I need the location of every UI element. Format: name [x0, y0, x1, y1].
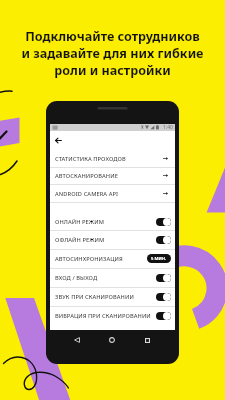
button[interactable]: ОНЛАЙН РЕЖИМ: [50, 213, 175, 230]
staticText: АВТОСКАНИРОВАНИЕ: [55, 172, 118, 180]
staticText: ОФЛАЙН РЕЖИМ: [55, 236, 105, 244]
staticText: АВТОСИНХРОНИЗАЦИЯ: [55, 255, 123, 263]
staticText: ANDROID CAMERA API: [55, 190, 119, 198]
staticText: СТАТИСТИКА ПРОХОДОВ: [55, 155, 126, 163]
button[interactable]: ВИБРАЦИЯ ПРИ СКАНИРОВАНИИ: [50, 307, 175, 324]
staticText: ВИБРАЦИЯ ПРИ СКАНИРОВАНИИ: [55, 312, 151, 320]
button[interactable]: АВТОСКАНИРОВАНИЕ: [50, 167, 175, 184]
staticText: ВХОД / ВЫХОД: [55, 274, 98, 282]
staticText: ЗВУК ПРИ СКАНИРОВАНИИ: [55, 293, 134, 301]
button[interactable]: Home: [105, 333, 119, 347]
button[interactable]: Back: [70, 333, 84, 347]
button[interactable]: Back: [51, 133, 65, 147]
button[interactable]: СТАТИСТИКА ПРОХОДОВ: [50, 150, 175, 167]
button[interactable]: Recent apps: [140, 333, 154, 347]
button[interactable]: ЗВУК ПРИ СКАНИРОВАНИИ: [50, 288, 175, 305]
button[interactable]: ANDROID CAMERA API: [50, 185, 175, 202]
button[interactable]: ОФЛАЙН РЕЖИМ: [50, 231, 175, 248]
staticText: 1:40: [163, 124, 173, 131]
staticText: ОНЛАЙН РЕЖИМ: [55, 218, 104, 226]
staticText: Подключайте сотрудников и задавайте для …: [0, 28, 225, 79]
button[interactable]: АВТОСИНХРОНИЗАЦИЯ: [50, 250, 175, 267]
staticText: 5 МИН.: [151, 256, 167, 262]
button[interactable]: ВХОД / ВЫХОД: [50, 269, 175, 286]
